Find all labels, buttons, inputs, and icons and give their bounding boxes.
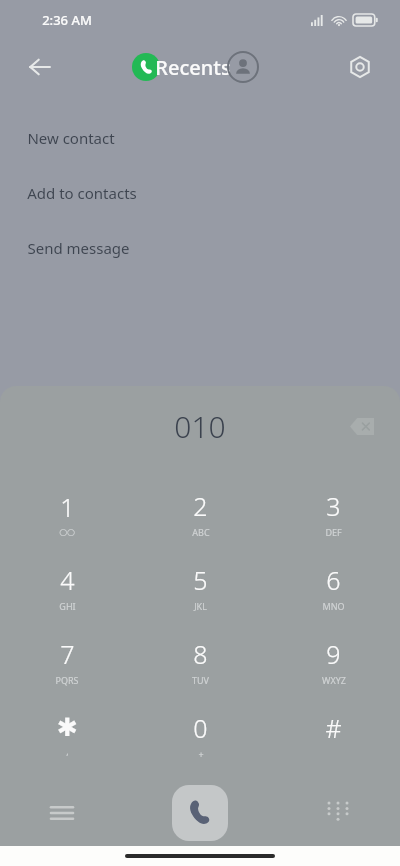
button[interactable]: 0 (134, 698, 267, 772)
button[interactable]: Menu (40, 791, 84, 835)
staticText: 7 (60, 637, 75, 671)
staticText: 8 (193, 637, 208, 671)
button[interactable]: 4 (0, 550, 134, 624)
button[interactable]: 8 (134, 624, 267, 698)
staticText: ✱ (57, 713, 78, 742)
staticText: 0 (193, 711, 208, 745)
staticText: + (198, 748, 204, 760)
staticText: 3 (326, 489, 341, 523)
staticText: TUV (192, 674, 209, 686)
staticText: # (325, 711, 342, 745)
button[interactable]: Dialpad (316, 791, 360, 835)
staticText: Send message (27, 238, 130, 258)
button[interactable]: Contacts (227, 51, 259, 83)
staticText: ○○ (59, 527, 75, 537)
button[interactable]: Back (18, 45, 62, 89)
button[interactable]: 7 (0, 624, 134, 698)
button[interactable]: 5 (134, 550, 267, 624)
staticText: , (66, 745, 69, 757)
staticText: GHI (59, 600, 76, 612)
staticText: Recents (155, 54, 231, 81)
button[interactable]: New contact (0, 110, 400, 165)
button[interactable]: Settings (338, 45, 382, 89)
button[interactable]: # (267, 698, 400, 772)
button[interactable]: Send message (0, 220, 400, 275)
staticText: JKL (194, 600, 207, 612)
staticText: ABC (192, 526, 210, 538)
staticText: 5 (193, 563, 208, 597)
staticText: New contact (27, 128, 115, 148)
button[interactable]: 2 (134, 476, 267, 550)
staticText: 4 (60, 563, 75, 597)
button[interactable]: 6 (267, 550, 400, 624)
button[interactable]: Add to contacts (0, 165, 400, 220)
staticText: 2 (193, 489, 208, 523)
button[interactable]: ✱ (0, 698, 134, 772)
staticText: 010 (174, 406, 226, 447)
staticText: Add to contacts (27, 183, 137, 203)
button[interactable]: Backspace (342, 406, 382, 446)
staticText: MNO (322, 600, 345, 612)
staticText: DEF (325, 526, 342, 538)
staticText: 6 (326, 563, 341, 597)
staticText: 9 (326, 637, 341, 671)
staticText: 1 (60, 490, 75, 524)
staticText: 2:36 AM (42, 11, 92, 29)
button[interactable]: 9 (267, 624, 400, 698)
button[interactable]: 1 (0, 476, 134, 550)
staticText: WXYZ (322, 674, 346, 686)
button[interactable]: Call (172, 785, 228, 841)
staticText: PQRS (55, 674, 79, 686)
button[interactable]: 3 (267, 476, 400, 550)
